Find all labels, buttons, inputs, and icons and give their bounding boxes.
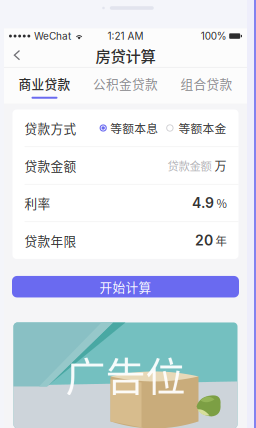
staticText: 等额本息 bbox=[110, 119, 158, 136]
button[interactable]: 开始计算 bbox=[12, 276, 239, 297]
staticText: 1:21 AM bbox=[107, 30, 143, 42]
button[interactable]: 组合贷款 bbox=[166, 68, 247, 104]
staticText: 公积金贷款 bbox=[93, 74, 158, 93]
staticText: 年 bbox=[215, 232, 226, 249]
staticText: 20 bbox=[195, 232, 213, 249]
staticText: 4.9 bbox=[192, 194, 214, 211]
button[interactable]: 公积金贷款 bbox=[85, 68, 166, 104]
staticText: 广告位 bbox=[65, 345, 185, 403]
staticText: 开始计算 bbox=[99, 277, 151, 296]
button[interactable]: Back bbox=[4, 44, 30, 67]
button[interactable]: 商业贷款 bbox=[4, 68, 85, 104]
staticText: 商业贷款 bbox=[18, 74, 70, 93]
staticText: 万 bbox=[214, 157, 226, 174]
staticText: 贷款年限 bbox=[24, 231, 76, 250]
staticText: WeChat bbox=[34, 30, 71, 42]
staticText: 贷款金额 bbox=[24, 156, 76, 175]
staticText: 组合贷款 bbox=[180, 74, 232, 93]
staticText: 利率 bbox=[24, 194, 50, 212]
staticText: 贷款金额 bbox=[167, 157, 211, 174]
staticText: 贷款方式 bbox=[24, 119, 76, 137]
staticText: % bbox=[216, 195, 226, 211]
staticText: 等额本金 bbox=[178, 119, 226, 136]
staticText: 房贷计算 bbox=[95, 44, 155, 66]
staticText: 100% bbox=[201, 30, 227, 42]
